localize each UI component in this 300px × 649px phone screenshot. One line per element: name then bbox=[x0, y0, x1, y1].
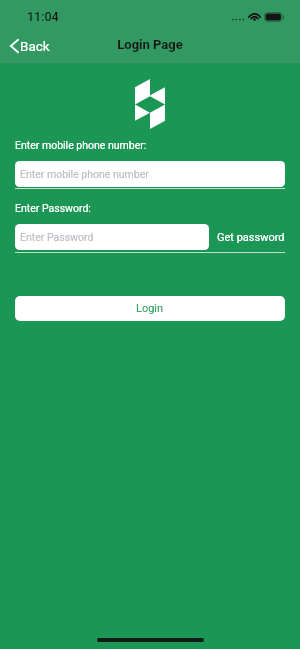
staticText: 11:04 bbox=[27, 9, 59, 24]
button[interactable]: Login bbox=[15, 296, 285, 321]
staticText: Enter Password: bbox=[15, 202, 91, 214]
button[interactable]: Back bbox=[10, 38, 50, 54]
staticText: Enter mobile phone number: bbox=[15, 139, 147, 151]
staticText: Back bbox=[20, 38, 50, 54]
button[interactable]: Enter mobile phone number bbox=[15, 161, 285, 187]
staticText: Enter Password bbox=[20, 231, 94, 243]
staticText: Enter mobile phone number bbox=[20, 168, 149, 180]
staticText: Login bbox=[136, 302, 164, 315]
button[interactable]: Get password bbox=[217, 224, 285, 250]
staticText: Login Page bbox=[117, 37, 183, 52]
staticText: Get password bbox=[217, 231, 285, 244]
button[interactable]: Enter Password bbox=[15, 224, 209, 250]
other: Back bbox=[10, 39, 19, 53]
